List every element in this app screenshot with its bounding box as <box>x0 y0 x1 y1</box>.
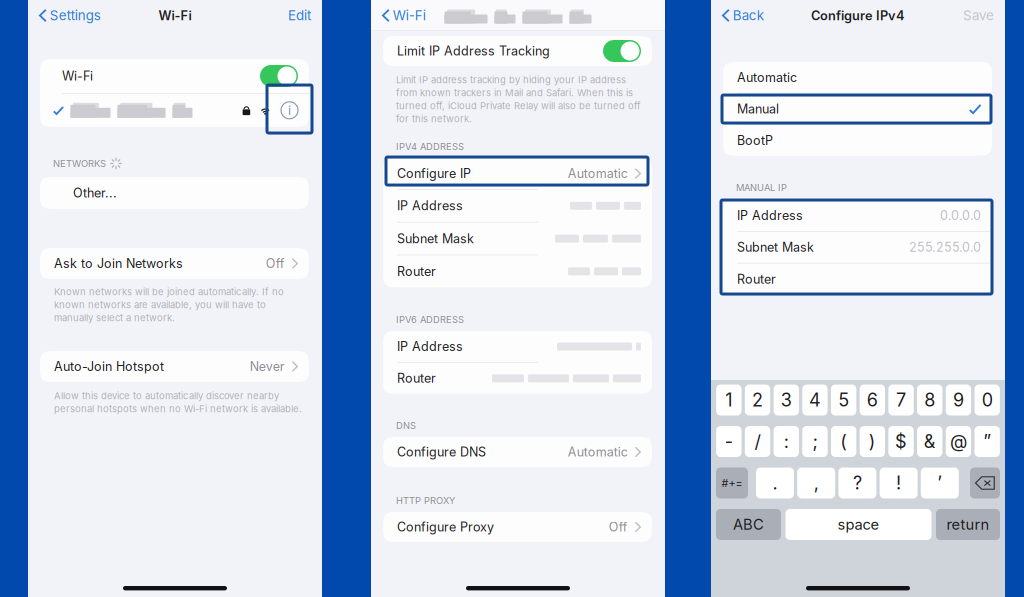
staticText: ! <box>896 472 901 494</box>
button[interactable]: 0 <box>974 384 1000 415</box>
staticText: 255.255.0.0 <box>909 240 981 255</box>
button[interactable]: Router <box>723 264 992 295</box>
button[interactable]: ? <box>838 467 876 498</box>
staticText: NETWORKS <box>53 158 106 169</box>
staticText: Configure Proxy <box>397 519 494 535</box>
staticText: IPV6 ADDRESS <box>396 314 464 325</box>
staticText: IP Address <box>737 208 803 223</box>
button[interactable]: return <box>936 509 1000 540</box>
staticText: Back <box>733 7 764 23</box>
staticText: / <box>755 431 761 452</box>
button[interactable]: Edit <box>288 2 322 28</box>
staticText: Never <box>250 359 285 374</box>
staticText: Off <box>266 256 285 271</box>
staticText: 8 <box>924 389 935 411</box>
button[interactable]: : <box>773 426 799 457</box>
button[interactable]: Delete <box>970 467 1000 498</box>
staticText: BootP <box>737 133 773 148</box>
staticText: Router <box>397 371 436 386</box>
staticText: Automatic <box>568 166 628 181</box>
button[interactable]: ’ <box>921 467 959 498</box>
staticText: Wi-Fi <box>62 68 93 84</box>
button[interactable]: ABC <box>716 509 781 540</box>
button[interactable]: space <box>785 509 931 540</box>
staticText: ’ <box>937 472 942 494</box>
button[interactable]: / <box>745 426 770 457</box>
button[interactable]: Subnet Mask <box>723 232 992 263</box>
button[interactable]: Wi-Fi <box>371 2 426 28</box>
staticText: 2 <box>752 389 763 411</box>
button[interactable]: ” <box>974 426 1000 457</box>
staticText: DNS <box>396 420 416 431</box>
button[interactable]: Automatic <box>723 62 992 93</box>
button[interactable]: ) <box>860 426 885 457</box>
staticText: Router <box>397 264 436 279</box>
button[interactable]: - <box>716 426 741 457</box>
button[interactable]: ( <box>831 426 856 457</box>
button[interactable]: 5 <box>831 384 856 415</box>
staticText: IP Address <box>397 198 463 213</box>
button[interactable]: IP Address <box>383 190 652 222</box>
button[interactable]: 3 <box>773 384 799 415</box>
staticText: - <box>725 431 733 452</box>
button[interactable]: ! <box>880 467 918 498</box>
button[interactable]: 8 <box>917 384 942 415</box>
button[interactable]: Router <box>383 363 652 394</box>
button[interactable]: Manual <box>723 93 992 124</box>
button[interactable]: ; <box>802 426 828 457</box>
staticText: space <box>837 516 879 533</box>
button[interactable]: 7 <box>888 384 914 415</box>
staticText: ) <box>869 431 876 452</box>
staticText: & <box>924 431 936 452</box>
staticText: Save <box>963 7 994 23</box>
button[interactable]: 9 <box>946 384 971 415</box>
button[interactable]: 2 <box>745 384 770 415</box>
button[interactable]: Settings <box>28 2 101 28</box>
staticText: ” <box>983 431 991 452</box>
button[interactable]: Save <box>963 2 1005 28</box>
staticText: 3 <box>781 389 792 411</box>
button[interactable]: 4 <box>802 384 828 415</box>
button[interactable]: Configure DNS <box>383 437 652 467</box>
staticText: ; <box>812 431 817 452</box>
button[interactable]: Subnet Mask <box>383 223 652 255</box>
staticText: Configure DNS <box>397 444 486 460</box>
staticText: 0 <box>982 389 993 411</box>
button[interactable]: & <box>917 426 942 457</box>
button[interactable]: Other... <box>40 177 309 209</box>
staticText: Other... <box>73 185 117 201</box>
button[interactable]: , <box>797 467 835 498</box>
button[interactable]: Configure Proxy <box>383 512 652 542</box>
button[interactable]: IP Address <box>383 331 652 362</box>
staticText: Off <box>609 519 628 535</box>
button[interactable]: #+= <box>716 467 748 498</box>
staticText: Edit <box>288 7 311 23</box>
staticText: Automatic <box>568 444 628 460</box>
staticText: Wi-Fi <box>158 8 191 23</box>
button[interactable]: Auto-Join Hotspot <box>40 351 309 382</box>
staticText: ? <box>853 472 862 494</box>
button[interactable]: Router <box>383 255 652 287</box>
button[interactable]: BootP <box>723 125 992 156</box>
button[interactable]: 6 <box>860 384 885 415</box>
staticText: #+= <box>721 476 742 489</box>
staticText: Configure IP <box>397 166 471 181</box>
button[interactable]: 1 <box>716 384 741 415</box>
staticText: 7 <box>896 389 906 411</box>
staticText: Auto-Join Hotspot <box>54 359 164 374</box>
button[interactable]: $ <box>888 426 914 457</box>
staticText: 1 <box>725 389 732 411</box>
button[interactable]: Configure IP <box>383 158 652 189</box>
staticText: @ <box>950 431 967 452</box>
button[interactable]: Ask to Join Networks <box>40 248 309 279</box>
staticText: Allow this device to automatically disco… <box>54 390 302 414</box>
staticText: Limit IP Address Tracking <box>397 43 550 59</box>
button[interactable]: @ <box>946 426 971 457</box>
button[interactable]: Back <box>711 2 764 28</box>
staticText: 9 <box>953 389 964 411</box>
button[interactable]: IP Address <box>723 200 992 231</box>
staticText: $ <box>895 431 907 452</box>
staticText: 4 <box>809 389 821 411</box>
staticText: . <box>772 472 777 494</box>
button[interactable]: . <box>756 467 794 498</box>
